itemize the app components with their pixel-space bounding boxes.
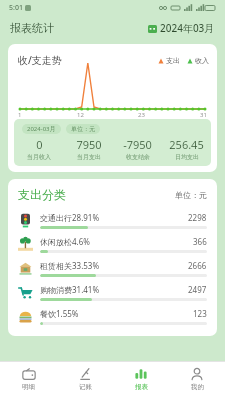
staticText: 当月收入 (27, 153, 51, 161)
staticText: 123 (193, 308, 207, 319)
staticText: 31 (200, 111, 207, 119)
staticText: 购物消费31.41% (40, 284, 100, 295)
other: 记账 (78, 367, 92, 381)
staticText: 收/支走势 (18, 53, 62, 67)
button[interactable]: 报表 (113, 362, 169, 400)
staticText: 租赁相关33.53% (40, 260, 100, 271)
staticText: 2024年03月 (160, 21, 215, 35)
button[interactable]: 餐饮1.55% (8, 304, 217, 328)
staticText: 2666 (188, 260, 207, 271)
staticText: 交通出行28.91% (40, 212, 100, 223)
staticText: 366 (193, 236, 207, 247)
staticText: 支出分类 (18, 187, 66, 202)
staticText: 单位：元 (175, 190, 207, 200)
other: 报表 (134, 367, 148, 381)
other: 我的 (190, 367, 204, 381)
button[interactable]: 休闲放松4.6% (8, 232, 217, 256)
staticText: 256.45 (169, 137, 204, 152)
staticText: 单位：元 (71, 125, 95, 133)
staticText: 日均支出 (175, 153, 199, 161)
staticText: 2298 (188, 212, 207, 223)
staticText: 0 (36, 137, 43, 152)
staticText: -7950 (123, 137, 152, 152)
staticText: 支出 (166, 56, 180, 65)
staticText: 5:01 (9, 3, 23, 13)
staticText: 休闲放松4.6% (40, 236, 90, 247)
staticText: 23 (138, 111, 145, 119)
button[interactable]: Select month (148, 21, 215, 35)
staticText: 记账 (79, 383, 92, 391)
staticText: 报表 (135, 383, 148, 391)
staticText: 1 (18, 111, 22, 119)
staticText: 报表统计 (10, 21, 54, 35)
button[interactable]: 明细 (0, 362, 57, 400)
button[interactable]: 我的 (169, 362, 225, 400)
button[interactable]: 交通出行28.91% (8, 208, 217, 232)
staticText: 当月支出 (77, 153, 101, 161)
staticText: 我的 (191, 383, 204, 391)
staticText: 明细 (22, 383, 35, 391)
staticText: 2024-03月 (27, 125, 56, 133)
staticText: 收支结余 (126, 153, 150, 161)
button[interactable]: 记账 (57, 362, 113, 400)
staticText: 12 (77, 111, 84, 119)
other: Select month (148, 24, 157, 33)
other: 明细 (22, 367, 36, 381)
button[interactable]: 购物消费31.41% (8, 280, 217, 304)
button[interactable]: 租赁相关33.53% (8, 256, 217, 280)
staticText: 2497 (188, 284, 207, 295)
staticText: 餐饮1.55% (40, 308, 79, 319)
staticText: 收入 (195, 56, 209, 65)
staticText: 7950 (76, 137, 102, 152)
